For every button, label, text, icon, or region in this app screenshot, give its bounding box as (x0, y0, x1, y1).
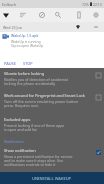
staticText: Evilbuch (2, 2, 17, 7)
staticText: Work around for Fingerprint and Smart Lo… (4, 93, 85, 98)
staticText: Show a persistent notification for servi… (4, 154, 73, 167)
button[interactable]: Search (53, 8, 63, 22)
staticText: Vibrate before locking (4, 71, 45, 76)
staticText: WakeUp-1.5.apk (11, 33, 39, 38)
staticText: 72% (82, 2, 89, 7)
button[interactable]: UNINSTALL WAKEUP (0, 172, 104, 184)
staticText: STOP (23, 61, 33, 66)
staticText: Notification (4, 139, 24, 144)
staticText: 22:13 (93, 2, 102, 7)
staticText: WakeUp is running (11, 39, 41, 43)
staticText: Prevent locking if one of these apps is … (4, 123, 65, 132)
button[interactable]: Work around for Fingerprint and Smart Lo… (0, 93, 104, 108)
staticText: PAUSE (4, 61, 16, 66)
button[interactable]: Protected (73, 22, 83, 32)
button[interactable]: More (91, 22, 101, 32)
button[interactable]: PAUSE (2, 59, 18, 68)
button[interactable]: WakeUp-1.5.apk (0, 32, 104, 47)
button[interactable]: Device (74, 8, 84, 22)
button[interactable]: Vibrate before locking (0, 71, 104, 86)
button[interactable]: Filter (1, 8, 10, 22)
button[interactable]: STOP (21, 59, 35, 68)
staticText: Excluded apps (4, 117, 31, 122)
button[interactable]: Settings (91, 8, 101, 22)
button[interactable]: Show notification (0, 148, 104, 167)
staticText: Notifies you of detection of accidental … (4, 77, 68, 86)
button[interactable]: Pause all (37, 8, 47, 22)
button[interactable]: Sort (18, 8, 28, 22)
staticText: Show notification (4, 148, 36, 153)
button[interactable]: Excluded apps (0, 117, 104, 132)
staticText: Wed 23 Jun (3, 25, 22, 30)
staticText: UNINSTALL WAKEUP (32, 176, 72, 181)
staticText: Turn off the screen emulating power butt… (4, 99, 78, 108)
staticText: Tap to open WakeUp (11, 43, 44, 47)
